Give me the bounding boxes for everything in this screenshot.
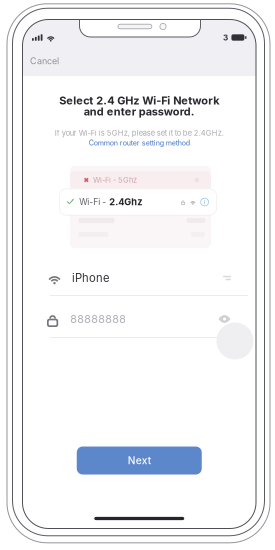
staticText: Common router setting method (89, 138, 190, 147)
staticText: 3 (223, 33, 228, 42)
staticText: Next (128, 454, 151, 467)
staticText: 88888888 (70, 312, 126, 325)
staticText: 2.4Ghz (109, 196, 142, 207)
staticText: If your Wi-Fi is 5GHz, please set it to … (55, 128, 224, 138)
button[interactable]: Next (77, 446, 202, 474)
button[interactable]: Show password (218, 315, 231, 323)
staticText: Wi-Fi - (79, 197, 106, 207)
button[interactable]: Cancel (30, 51, 72, 71)
staticText: Cancel (30, 56, 59, 66)
button[interactable]: Common router setting method (22, 138, 256, 148)
staticText: Wi-Fi - 5Ghz (93, 175, 137, 184)
staticText: Select 2.4 GHz Wi-Fi Network (59, 94, 219, 107)
staticText: iPhone (72, 271, 110, 285)
staticText: and enter password. (84, 105, 195, 118)
